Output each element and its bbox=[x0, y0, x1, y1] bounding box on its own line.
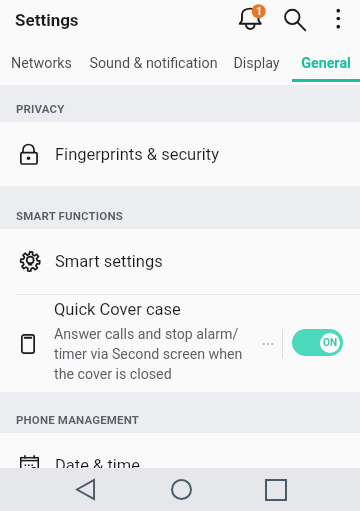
button[interactable]: Networks bbox=[3, 46, 79, 85]
staticText: Smart settings bbox=[55, 252, 163, 271]
button[interactable]: Notifications bbox=[232, 0, 268, 40]
button[interactable]: Home bbox=[151, 468, 211, 511]
button[interactable]: Sound & notification bbox=[82, 46, 224, 85]
staticText: Display bbox=[233, 55, 280, 72]
staticText: Sound & notification bbox=[89, 55, 218, 72]
button[interactable]: ON bbox=[292, 329, 343, 356]
button[interactable]: Search bbox=[276, 0, 310, 40]
button[interactable]: More options bbox=[326, 0, 352, 40]
staticText: 1 bbox=[256, 5, 263, 18]
staticText: Answer calls and stop alarm/ timer via S… bbox=[54, 326, 243, 382]
staticText: Networks bbox=[11, 55, 72, 72]
button[interactable]: Quick Cover case bbox=[0, 295, 360, 392]
button[interactable]: Smart settings bbox=[0, 229, 360, 294]
staticText: Quick Cover case bbox=[54, 300, 181, 319]
button[interactable]: General bbox=[292, 46, 360, 85]
button[interactable]: Back bbox=[55, 468, 115, 511]
staticText: ON bbox=[323, 337, 338, 349]
button[interactable]: Date & time bbox=[0, 433, 360, 468]
staticText: Date & time bbox=[55, 456, 141, 468]
staticText: Settings bbox=[15, 10, 79, 30]
staticText: Fingerprints & security bbox=[55, 145, 220, 164]
button[interactable]: Recent apps bbox=[246, 468, 306, 511]
button[interactable]: Display bbox=[223, 46, 289, 85]
staticText: PRIVACY bbox=[16, 102, 65, 115]
staticText: SMART FUNCTIONS bbox=[16, 209, 123, 222]
staticText: PHONE MANAGEMENT bbox=[16, 413, 140, 426]
button[interactable]: Fingerprints & security bbox=[0, 122, 360, 186]
button[interactable]: More options bbox=[260, 328, 284, 360]
staticText: General bbox=[301, 55, 351, 72]
